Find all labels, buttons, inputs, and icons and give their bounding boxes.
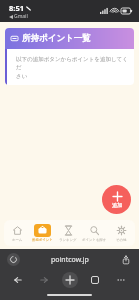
button[interactable]: Reload: [7, 253, 20, 266]
button[interactable]: Share: [119, 253, 132, 266]
button[interactable]: その他: [112, 223, 131, 243]
staticText: Gmail: [14, 13, 28, 20]
button[interactable]: 追加: [102, 185, 131, 214]
staticText: 追加: [112, 202, 122, 208]
button[interactable]: 所持ポイント一覧: [5, 28, 134, 85]
staticText: 以下の追加ボタンからポイントを追加してくだ さい: [16, 56, 128, 80]
staticText: ホーム: [12, 238, 23, 242]
button[interactable]: ポイントを探す: [81, 223, 108, 243]
staticText: pointcow.jp: [51, 255, 89, 265]
staticText: 所持ポイント: [32, 238, 53, 242]
button[interactable]: Forward: [36, 272, 52, 288]
button[interactable]: Tabs: [87, 272, 103, 288]
button[interactable]: ホーム: [8, 223, 27, 243]
staticText: その他: [116, 238, 127, 242]
button[interactable]: Back: [10, 272, 26, 288]
button[interactable]: More: [113, 272, 129, 288]
staticText: ランキング: [59, 238, 77, 242]
staticText: 所持ポイント一覧: [22, 33, 91, 44]
button[interactable]: 所持ポイント: [31, 223, 54, 243]
button[interactable]: New tab: [62, 272, 78, 288]
button[interactable]: ランキング: [58, 223, 78, 243]
staticText: ポイントを探す: [82, 238, 107, 242]
staticText: 8:51: [9, 3, 24, 13]
